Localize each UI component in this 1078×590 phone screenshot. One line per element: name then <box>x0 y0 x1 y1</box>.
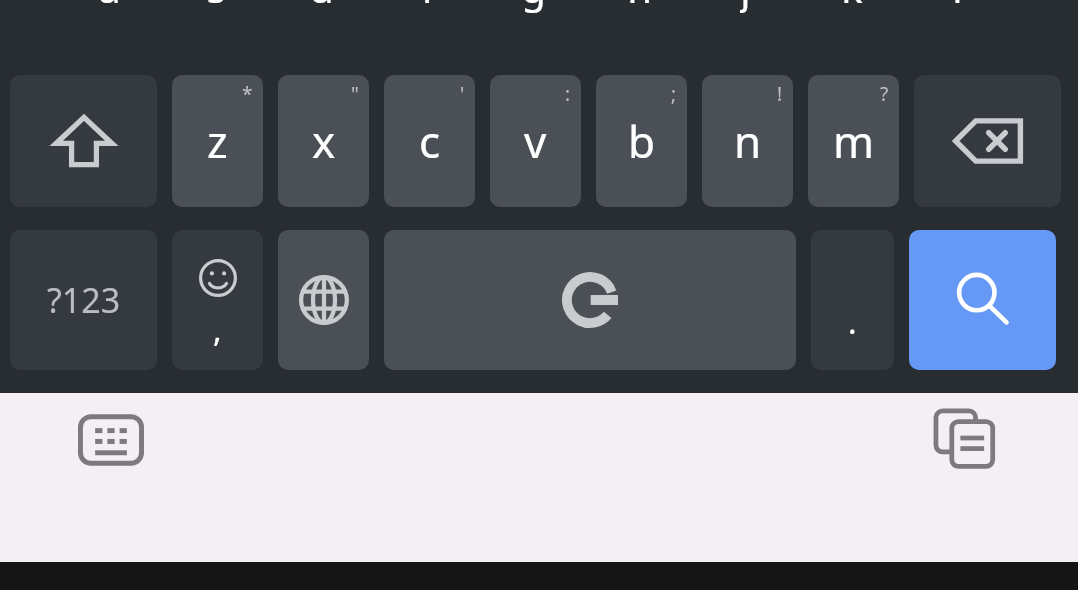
button[interactable]: . <box>811 230 894 370</box>
staticText: ? <box>880 81 889 107</box>
button[interactable]: x <box>278 75 369 207</box>
staticText: x <box>312 111 336 171</box>
staticText: ?123 <box>47 277 121 323</box>
staticText: f <box>421 0 435 13</box>
button[interactable]: v <box>490 75 581 207</box>
staticText: l <box>952 0 963 13</box>
staticText: , <box>213 308 222 352</box>
staticText: s <box>206 0 226 13</box>
button[interactable]: Change language <box>278 230 369 370</box>
staticText: j <box>740 0 751 13</box>
button[interactable]: Shift <box>10 75 157 207</box>
staticText: h <box>627 0 652 13</box>
button[interactable]: Search <box>909 230 1056 370</box>
staticText: g <box>521 0 546 13</box>
button[interactable]: f <box>382 0 473 53</box>
staticText: ! <box>777 81 783 107</box>
button[interactable]: s <box>170 0 261 53</box>
button[interactable]: m <box>808 75 899 207</box>
staticText: : <box>565 81 571 107</box>
staticText: ' <box>460 81 465 107</box>
staticText: m <box>833 111 875 171</box>
button[interactable]: g <box>488 0 579 53</box>
staticText: k <box>841 0 863 13</box>
staticText: n <box>734 111 762 171</box>
staticText: c <box>419 111 441 171</box>
button[interactable]: Emoji <box>172 230 263 370</box>
button[interactable]: a <box>64 0 155 53</box>
button[interactable]: c <box>384 75 475 207</box>
staticText: * <box>242 81 253 107</box>
staticText: . <box>848 300 857 344</box>
button[interactable]: k <box>806 0 897 53</box>
button[interactable]: Backspace <box>914 75 1061 207</box>
button[interactable]: l <box>912 0 1003 53</box>
button[interactable]: n <box>702 75 793 207</box>
staticText: d <box>309 0 334 13</box>
button[interactable]: ?123 <box>10 230 157 370</box>
button[interactable]: z <box>172 75 263 207</box>
button[interactable]: Keyboard <box>69 398 153 482</box>
staticText: b <box>628 111 656 171</box>
button[interactable]: Space <box>384 230 796 370</box>
staticText: a <box>98 0 121 13</box>
staticText: ; <box>671 81 677 107</box>
staticText: z <box>207 111 228 171</box>
staticText: " <box>351 81 359 107</box>
button[interactable]: h <box>594 0 685 53</box>
button[interactable]: d <box>276 0 367 53</box>
staticText: v <box>524 111 547 171</box>
button[interactable]: b <box>596 75 687 207</box>
button[interactable]: j <box>700 0 791 53</box>
button[interactable]: Clipboard <box>923 398 1007 482</box>
